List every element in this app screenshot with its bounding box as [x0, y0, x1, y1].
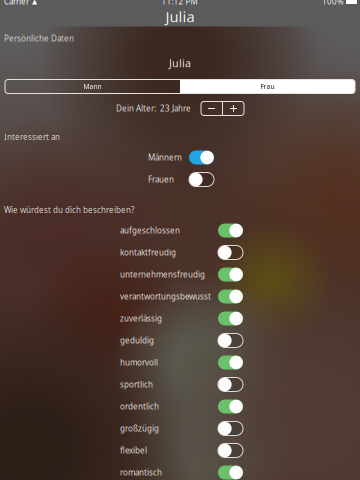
button[interactable]: kontaktfreudig — [0, 241, 360, 263]
button[interactable]: zuverlässig — [0, 307, 360, 329]
staticText: Interessiert an — [4, 132, 60, 142]
staticText: geduldig — [120, 335, 154, 346]
button[interactable]: verantwortungsbewusst — [0, 285, 360, 307]
button[interactable]: romantisch — [0, 461, 360, 480]
button[interactable]: Mann — [5, 79, 180, 93]
staticText: aufgeschlossen — [120, 225, 180, 236]
staticText: Frauen — [148, 174, 174, 185]
staticText: Mann — [83, 82, 101, 91]
button[interactable]: humorvoll — [0, 351, 360, 373]
staticText: Julia — [165, 7, 194, 26]
staticText: Männern — [148, 152, 182, 163]
button[interactable]: aufgeschlossen — [0, 219, 360, 241]
staticText: flexibel — [120, 445, 147, 456]
staticText: ordentlich — [120, 401, 159, 412]
staticText: verantwortungsbewusst — [120, 291, 211, 302]
staticText: 11:12 PM — [161, 0, 197, 7]
staticText: Wie würdest du dich beschreiben? — [4, 205, 134, 215]
button[interactable]: Frauen — [0, 168, 360, 190]
button[interactable]: flexibel — [0, 439, 360, 461]
button[interactable]: Decrease age — [201, 101, 222, 115]
staticText: kontaktfreudig — [120, 247, 176, 258]
button[interactable]: großzügig — [0, 417, 360, 439]
staticText: romantisch — [120, 467, 162, 478]
staticText: unternehmensfreudig — [120, 269, 205, 280]
button[interactable]: Increase age — [223, 101, 244, 115]
staticText: humorvoll — [120, 357, 158, 368]
button[interactable]: Männern — [0, 146, 360, 168]
staticText: Carrier — [4, 0, 29, 7]
button[interactable]: Frau — [180, 79, 355, 93]
staticText: Dein Alter: 23 Jahre — [116, 103, 191, 114]
staticText: großzügig — [120, 423, 159, 434]
staticText: sportlich — [120, 379, 153, 390]
staticText: zuverlässig — [120, 313, 162, 324]
staticText: Frau — [260, 82, 274, 91]
button[interactable]: Julia — [0, 40, 360, 77]
staticText: ▲ — [32, 0, 37, 5]
staticText: Persönliche Daten — [4, 33, 74, 44]
button[interactable]: geduldig — [0, 329, 360, 351]
staticText: Julia — [169, 56, 191, 70]
staticText: 100% — [322, 0, 344, 7]
button[interactable]: ordentlich — [0, 395, 360, 417]
button[interactable]: unternehmensfreudig — [0, 263, 360, 285]
button[interactable]: sportlich — [0, 373, 360, 395]
